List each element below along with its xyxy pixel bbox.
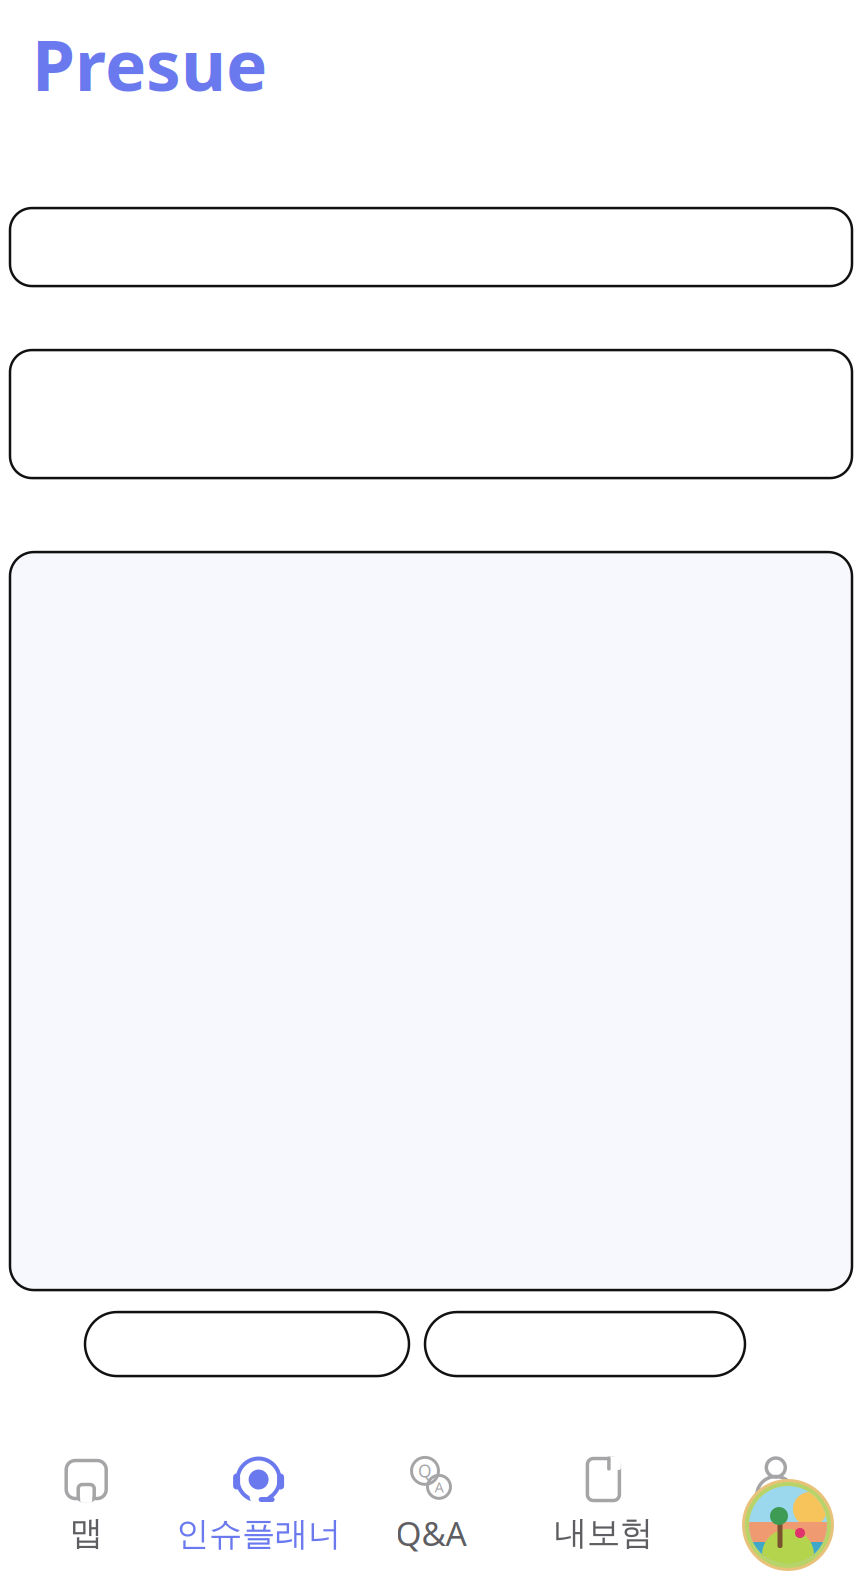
button[interactable]: 맵 [0, 1450, 172, 1559]
button[interactable] [10, 350, 852, 478]
staticText: Q&A [395, 1511, 466, 1555]
button[interactable]: Profile [742, 1479, 834, 1571]
button[interactable] [85, 1312, 409, 1376]
button[interactable]: 내보험 [517, 1450, 690, 1559]
button[interactable] [425, 1312, 745, 1376]
button[interactable]: 마이 [690, 1450, 862, 1559]
button[interactable]: Q [345, 1449, 517, 1561]
staticText: A [434, 1477, 443, 1497]
staticText: 내보험 [554, 1512, 653, 1553]
staticText: 맵 [70, 1512, 103, 1553]
staticText: Q [418, 1459, 432, 1482]
staticText: 인슈플래너 [176, 1513, 341, 1554]
button[interactable] [10, 208, 852, 286]
button[interactable]: 인슈플래너 [172, 1449, 345, 1560]
staticText: 마이 [743, 1512, 809, 1553]
staticText: Presue [32, 18, 267, 110]
